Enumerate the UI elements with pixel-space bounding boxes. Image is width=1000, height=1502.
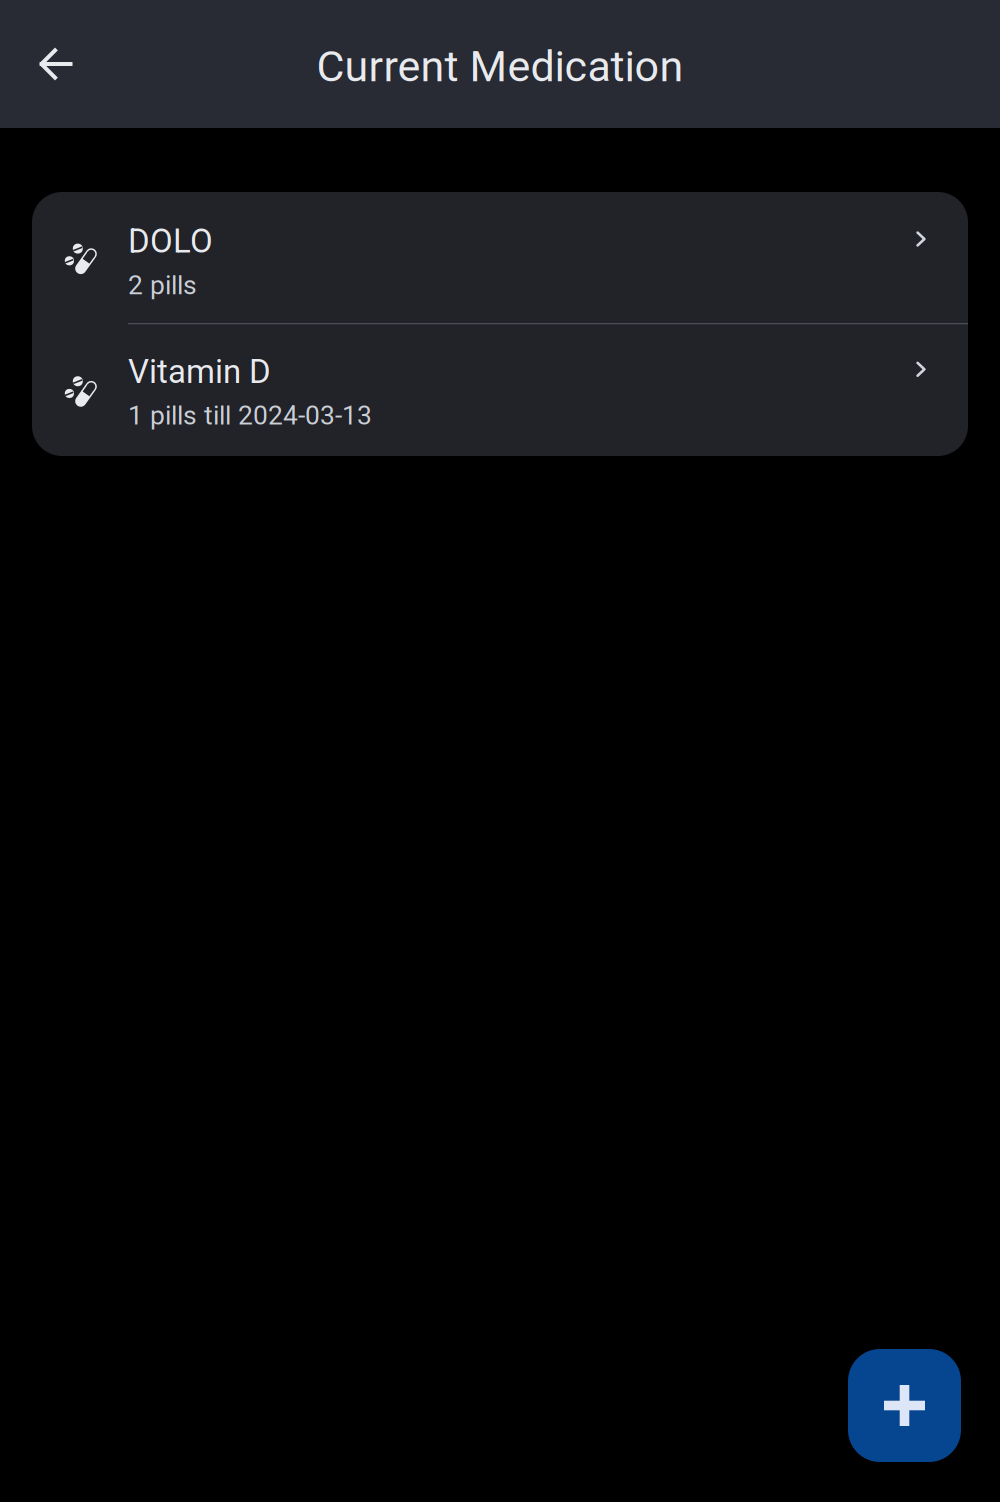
staticText: Vitamin D (128, 352, 271, 391)
button[interactable]: Back (22, 30, 90, 98)
staticText: 2 pills (128, 270, 197, 301)
staticText: Current Medication (316, 41, 683, 92)
staticText: 1 pills till 2024-03-13 (128, 400, 372, 431)
staticText: DOLO (128, 222, 213, 261)
button[interactable]: Add medication (848, 1349, 961, 1462)
button[interactable]: DOLO (32, 192, 968, 323)
button[interactable]: Vitamin D (32, 324, 968, 456)
